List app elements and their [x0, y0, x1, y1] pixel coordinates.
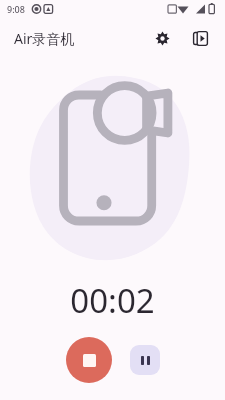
- button[interactable]: Pause recording: [130, 345, 160, 375]
- button[interactable]: Settings: [147, 23, 177, 53]
- staticText: 9:08: [7, 3, 25, 15]
- staticText: 00:02: [70, 278, 155, 323]
- button[interactable]: Recordings: [185, 23, 215, 53]
- button[interactable]: Stop recording: [66, 337, 112, 383]
- staticText: Air录音机: [14, 29, 75, 48]
